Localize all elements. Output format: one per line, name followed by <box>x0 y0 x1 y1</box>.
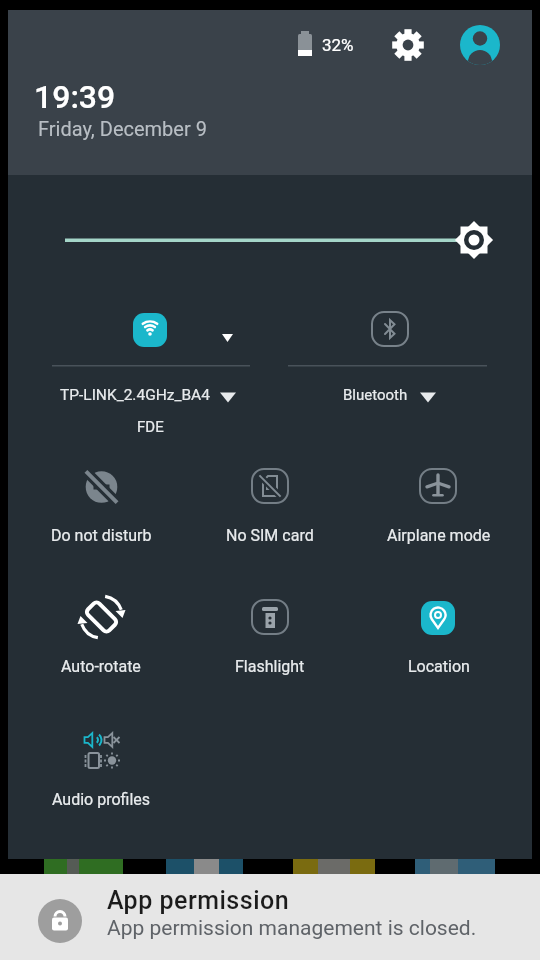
staticText: App permission management is closed. <box>107 916 477 941</box>
staticText: TP-LINK_2.4GHz_BA4 <box>60 386 210 404</box>
button[interactable] <box>330 300 450 420</box>
staticText: Friday, December 9 <box>38 117 207 140</box>
staticText: 19:39 <box>34 78 116 116</box>
button[interactable] <box>40 455 164 555</box>
staticText: No SIM card <box>226 526 314 545</box>
button[interactable] <box>0 874 540 960</box>
button[interactable] <box>460 25 500 65</box>
button[interactable] <box>376 586 500 686</box>
button[interactable] <box>376 455 500 555</box>
staticText: FDE <box>137 418 164 436</box>
button[interactable] <box>40 586 164 686</box>
staticText: Audio profiles <box>52 790 151 809</box>
button[interactable] <box>418 205 488 275</box>
staticText: Airplane mode <box>387 526 491 545</box>
button[interactable] <box>208 455 332 555</box>
staticText: Do not disturb <box>51 526 152 545</box>
staticText: Flashlight <box>235 657 305 676</box>
button[interactable] <box>208 586 332 686</box>
button[interactable] <box>120 300 240 420</box>
button[interactable] <box>390 27 426 63</box>
staticText: 32% <box>322 35 354 55</box>
staticText: App permission <box>107 886 290 915</box>
button[interactable] <box>40 718 164 818</box>
staticText: Bluetooth <box>343 386 408 404</box>
staticText: Location <box>408 657 470 676</box>
staticText: Auto-rotate <box>61 657 141 676</box>
